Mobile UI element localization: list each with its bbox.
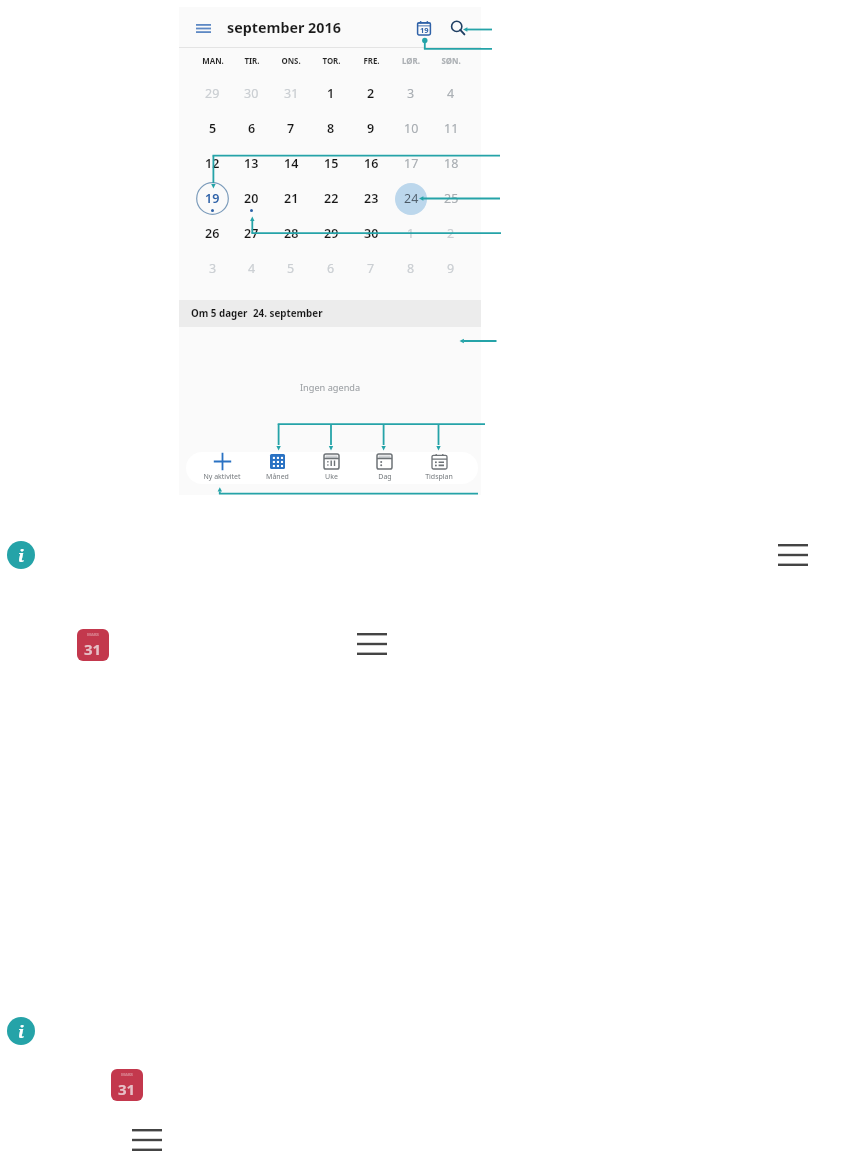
button[interactable]: 30 [232, 76, 271, 111]
staticText: 20 [244, 190, 259, 207]
button[interactable]: 27 [232, 216, 271, 251]
staticText: Ingen agenda [300, 381, 361, 394]
button[interactable]: Dag [358, 452, 410, 484]
button[interactable]: 31 [271, 76, 311, 111]
staticText: 29 [324, 225, 339, 242]
button[interactable]: Info [7, 541, 35, 569]
button[interactable]: 16 [351, 146, 391, 181]
staticText: 1 [407, 225, 415, 242]
button[interactable]: 29 [193, 76, 232, 111]
staticText: 19 [420, 25, 429, 35]
button[interactable]: 20 [232, 181, 271, 216]
button[interactable]: 24 [391, 181, 431, 216]
button[interactable]: 7 [271, 111, 311, 146]
staticText: 7 [287, 120, 295, 137]
button[interactable]: 3 [391, 76, 431, 111]
staticText: Tidsplan [425, 472, 453, 482]
staticText: 29 [205, 85, 220, 102]
button[interactable]: 4 [232, 251, 271, 286]
staticText: Uke [325, 472, 338, 482]
staticText: 26 [205, 225, 220, 242]
button[interactable]: 8 [311, 111, 351, 146]
staticText: Ny aktivitet [203, 472, 241, 482]
button[interactable]: Ny aktivitet [196, 452, 248, 484]
button[interactable]: 22 [311, 181, 351, 216]
button[interactable]: 6 [311, 251, 351, 286]
staticText: 3 [209, 260, 217, 277]
button[interactable]: 2 [351, 76, 391, 111]
button[interactable]: Uke [305, 452, 357, 484]
button[interactable]: Menu [353, 629, 391, 659]
button[interactable]: 9 [431, 251, 471, 286]
staticText: 3 [407, 85, 415, 102]
button[interactable]: 15 [311, 146, 351, 181]
button[interactable]: 10 [391, 111, 431, 146]
button[interactable]: 25 [431, 181, 471, 216]
staticText: 28 [284, 225, 299, 242]
staticText: 24. september [253, 307, 323, 320]
button[interactable]: 28 [271, 216, 311, 251]
staticText: MARS [121, 1072, 133, 1078]
staticText: 17 [404, 155, 419, 172]
button[interactable]: 29 [311, 216, 351, 251]
button[interactable]: Måned [251, 452, 303, 484]
staticText: 8 [327, 120, 335, 137]
button[interactable]: 1 [311, 76, 351, 111]
button[interactable]: 3 [193, 251, 232, 286]
button[interactable]: 7 [351, 251, 391, 286]
button[interactable]: 5 [193, 111, 232, 146]
button[interactable]: Info [7, 1017, 35, 1045]
staticText: MAN. [202, 56, 224, 67]
staticText: 18 [444, 155, 459, 172]
button[interactable]: Search [447, 17, 469, 39]
staticText: 31 [118, 1079, 136, 1099]
staticText: 12 [205, 155, 220, 172]
button[interactable]: 6 [232, 111, 271, 146]
button[interactable]: 11 [431, 111, 471, 146]
staticText: MARS [87, 632, 99, 638]
button[interactable]: 23 [351, 181, 391, 216]
button[interactable]: Menu [192, 17, 214, 39]
button[interactable]: Tidsplan [413, 452, 465, 484]
button[interactable]: 1 [391, 216, 431, 251]
button[interactable]: Calendar app [77, 629, 109, 661]
staticText: 22 [324, 190, 339, 207]
button[interactable]: 8 [391, 251, 431, 286]
button[interactable]: 2 [431, 216, 471, 251]
button[interactable]: 30 [351, 216, 391, 251]
button[interactable]: Calendar app [111, 1069, 143, 1101]
button[interactable]: 14 [271, 146, 311, 181]
button[interactable]: Menu [128, 1125, 166, 1151]
button[interactable]: 26 [193, 216, 232, 251]
button[interactable]: Go to today [413, 17, 435, 39]
staticText: september 2016 [227, 18, 341, 37]
button[interactable]: 12 [193, 146, 232, 181]
staticText: 31 [284, 85, 299, 102]
staticText: 5 [287, 260, 295, 277]
staticText: Dag [378, 472, 392, 482]
button[interactable]: 9 [351, 111, 391, 146]
staticText: FRE. [363, 56, 380, 67]
staticText: Måned [266, 472, 289, 482]
button[interactable]: 13 [232, 146, 271, 181]
staticText: 16 [364, 155, 379, 172]
staticText: i [18, 544, 25, 567]
staticText: 4 [447, 85, 455, 102]
button[interactable]: 21 [271, 181, 311, 216]
staticText: 10 [404, 120, 419, 137]
button[interactable]: Menu [774, 540, 812, 570]
staticText: 30 [364, 225, 379, 242]
button[interactable]: 19 [193, 181, 232, 216]
staticText: 21 [284, 190, 299, 207]
staticText: SØN. [441, 56, 461, 67]
button[interactable]: 18 [431, 146, 471, 181]
button[interactable]: 17 [391, 146, 431, 181]
staticText: 5 [209, 120, 217, 137]
staticText: Om 5 dager [191, 307, 248, 320]
staticText: 15 [324, 155, 339, 172]
staticText: 2 [367, 85, 375, 102]
button[interactable]: 5 [271, 251, 311, 286]
staticText: 11 [444, 120, 459, 137]
button[interactable]: 4 [431, 76, 471, 111]
staticText: TIR. [244, 56, 260, 67]
